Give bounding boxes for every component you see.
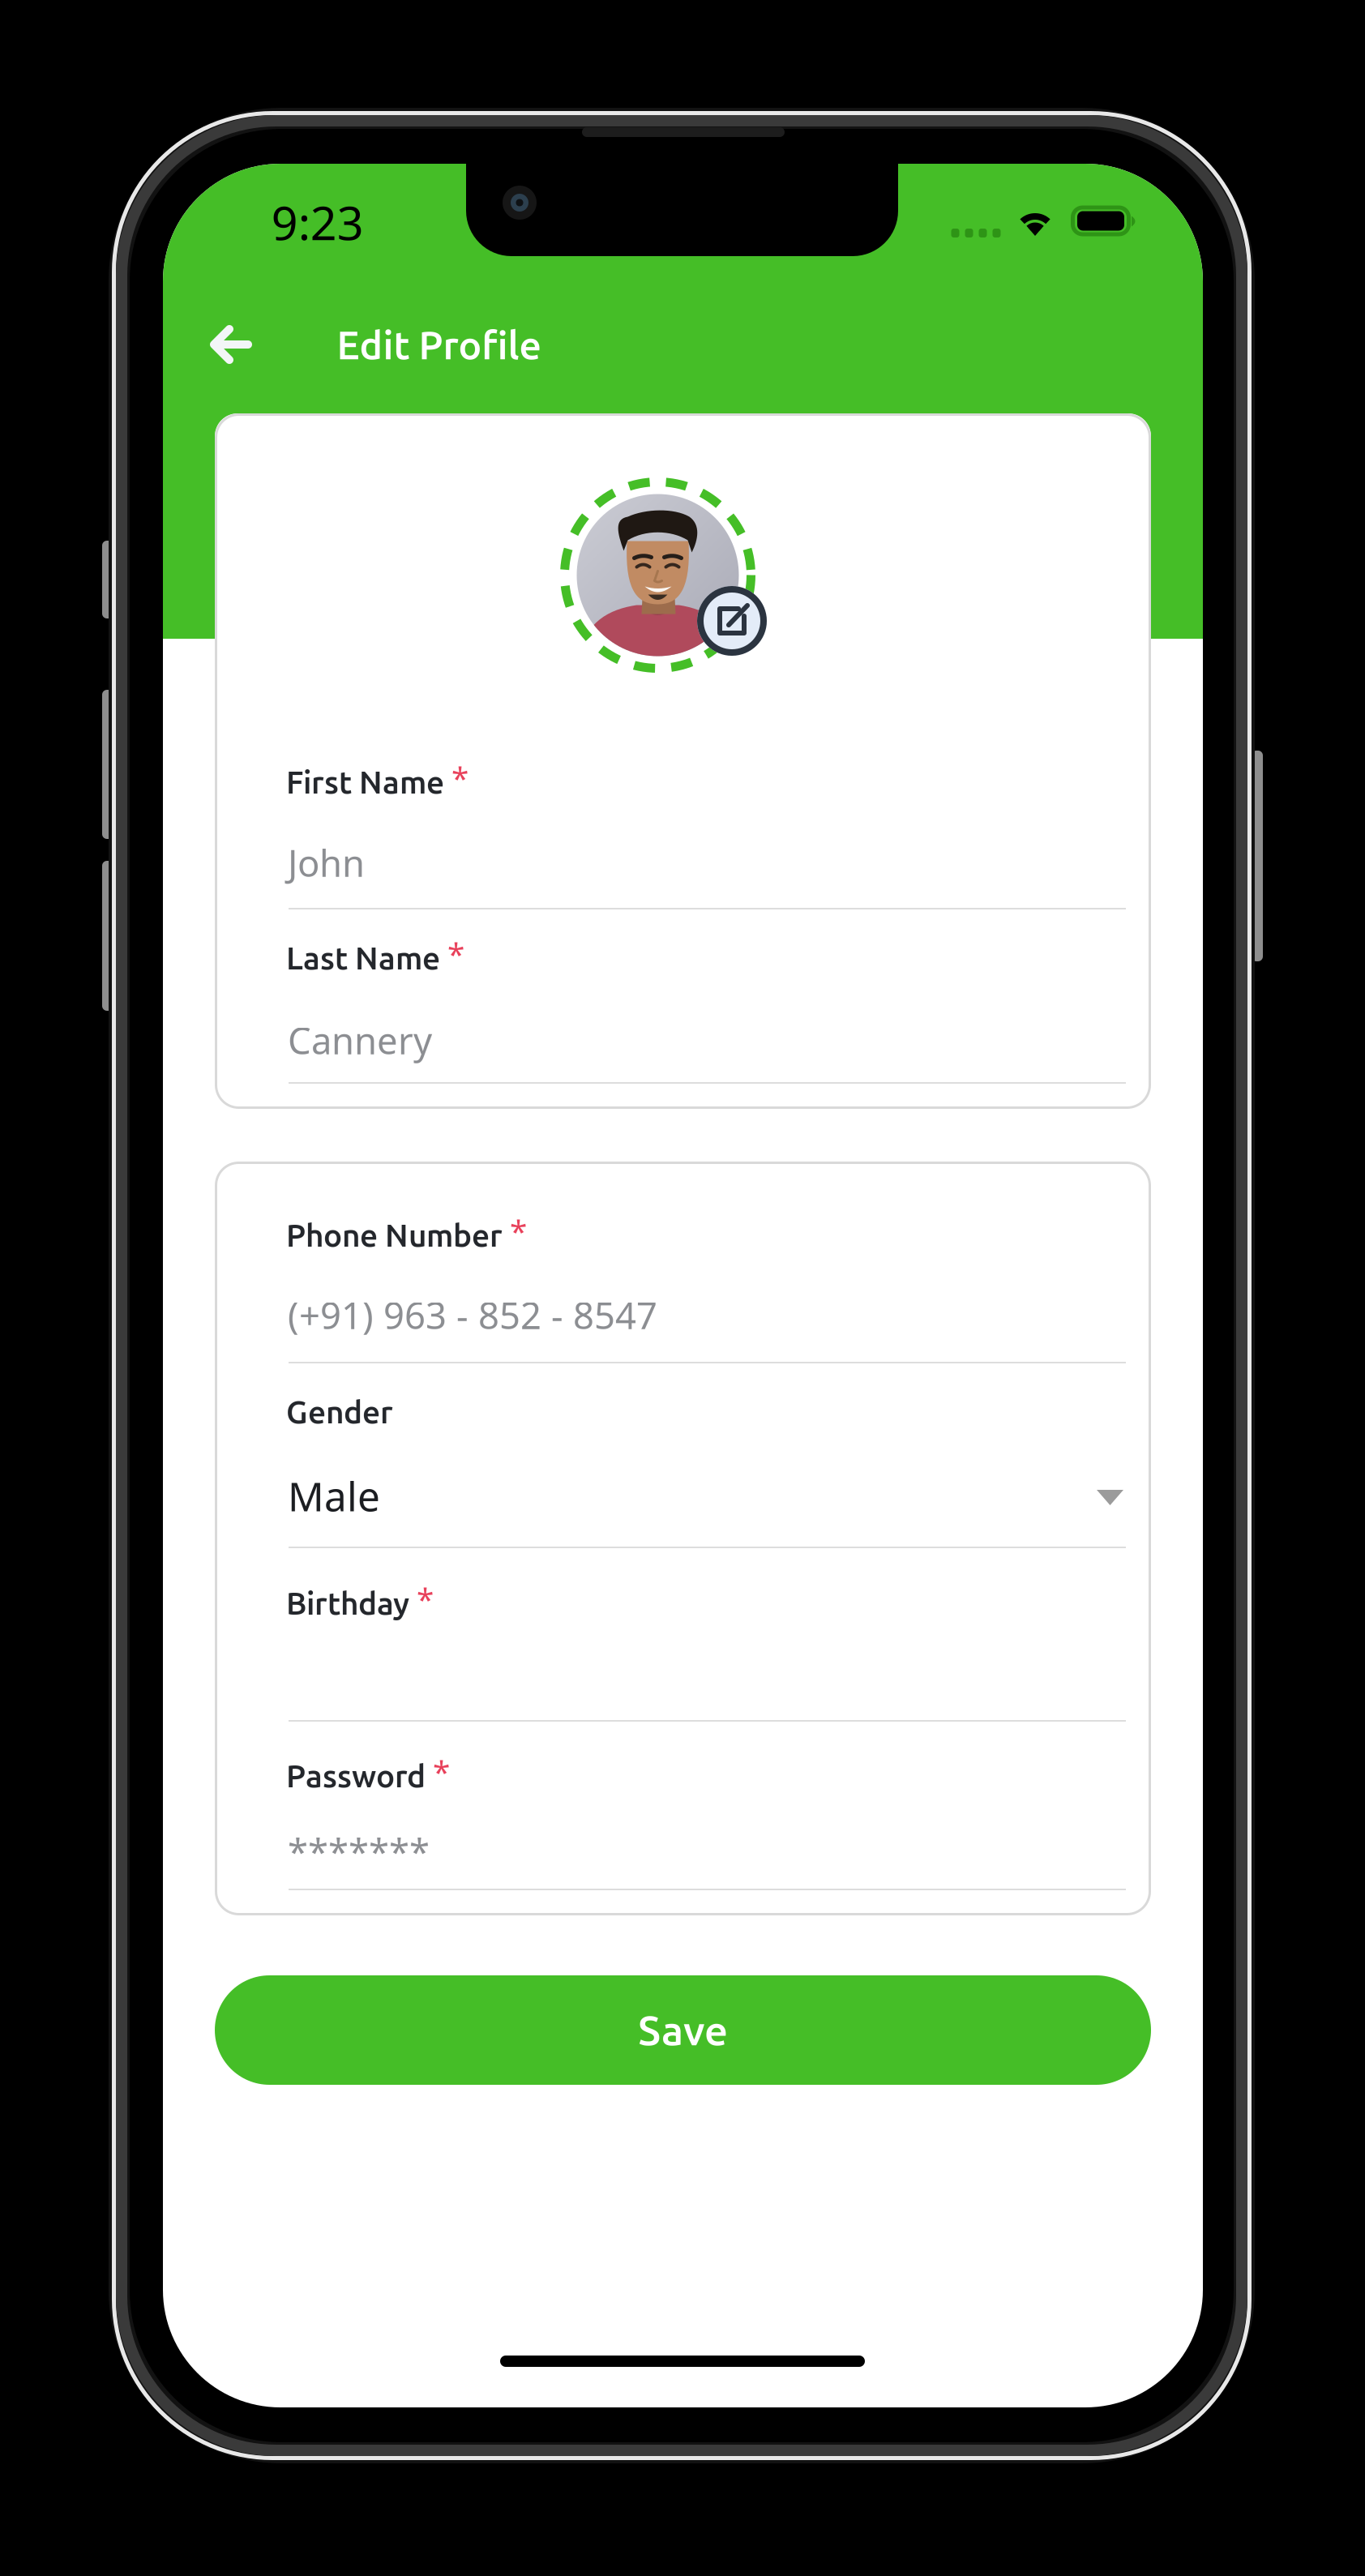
button[interactable]: Gender: [163, 164, 1203, 2407]
button[interactable]: Change photo: [697, 586, 767, 656]
staticText: Edit Profile: [337, 323, 541, 367]
staticText: *: [417, 1578, 434, 1620]
staticText: (+91) 963 - 852 - 8547: [288, 1290, 657, 1340]
staticText: Gender: [286, 1394, 393, 1429]
staticText: *: [448, 932, 465, 975]
staticText: Save: [638, 2007, 728, 2053]
button[interactable]: Password: [163, 164, 1203, 2407]
staticText: Male: [288, 1469, 380, 1523]
staticText: Password: [286, 1758, 426, 1793]
staticText: First Name: [286, 764, 444, 799]
button[interactable]: Birthday: [163, 164, 1203, 2407]
staticText: 9:23: [271, 190, 364, 254]
staticText: John: [288, 837, 365, 887]
staticText: *: [433, 1750, 450, 1793]
staticText: Birthday: [286, 1585, 409, 1620]
button[interactable]: Back: [210, 325, 251, 364]
staticText: Last Name: [286, 940, 440, 975]
button[interactable]: Phone Number: [163, 164, 1203, 2407]
button[interactable]: First Name: [163, 164, 1203, 2407]
staticText: Phone Number: [286, 1217, 503, 1252]
button[interactable]: Save: [215, 1975, 1151, 2085]
staticText: *******: [288, 1826, 430, 1876]
staticText: Cannery: [288, 1015, 432, 1065]
staticText: *: [510, 1210, 527, 1252]
button[interactable]: Last Name: [163, 164, 1203, 2407]
staticText: *: [452, 756, 469, 799]
